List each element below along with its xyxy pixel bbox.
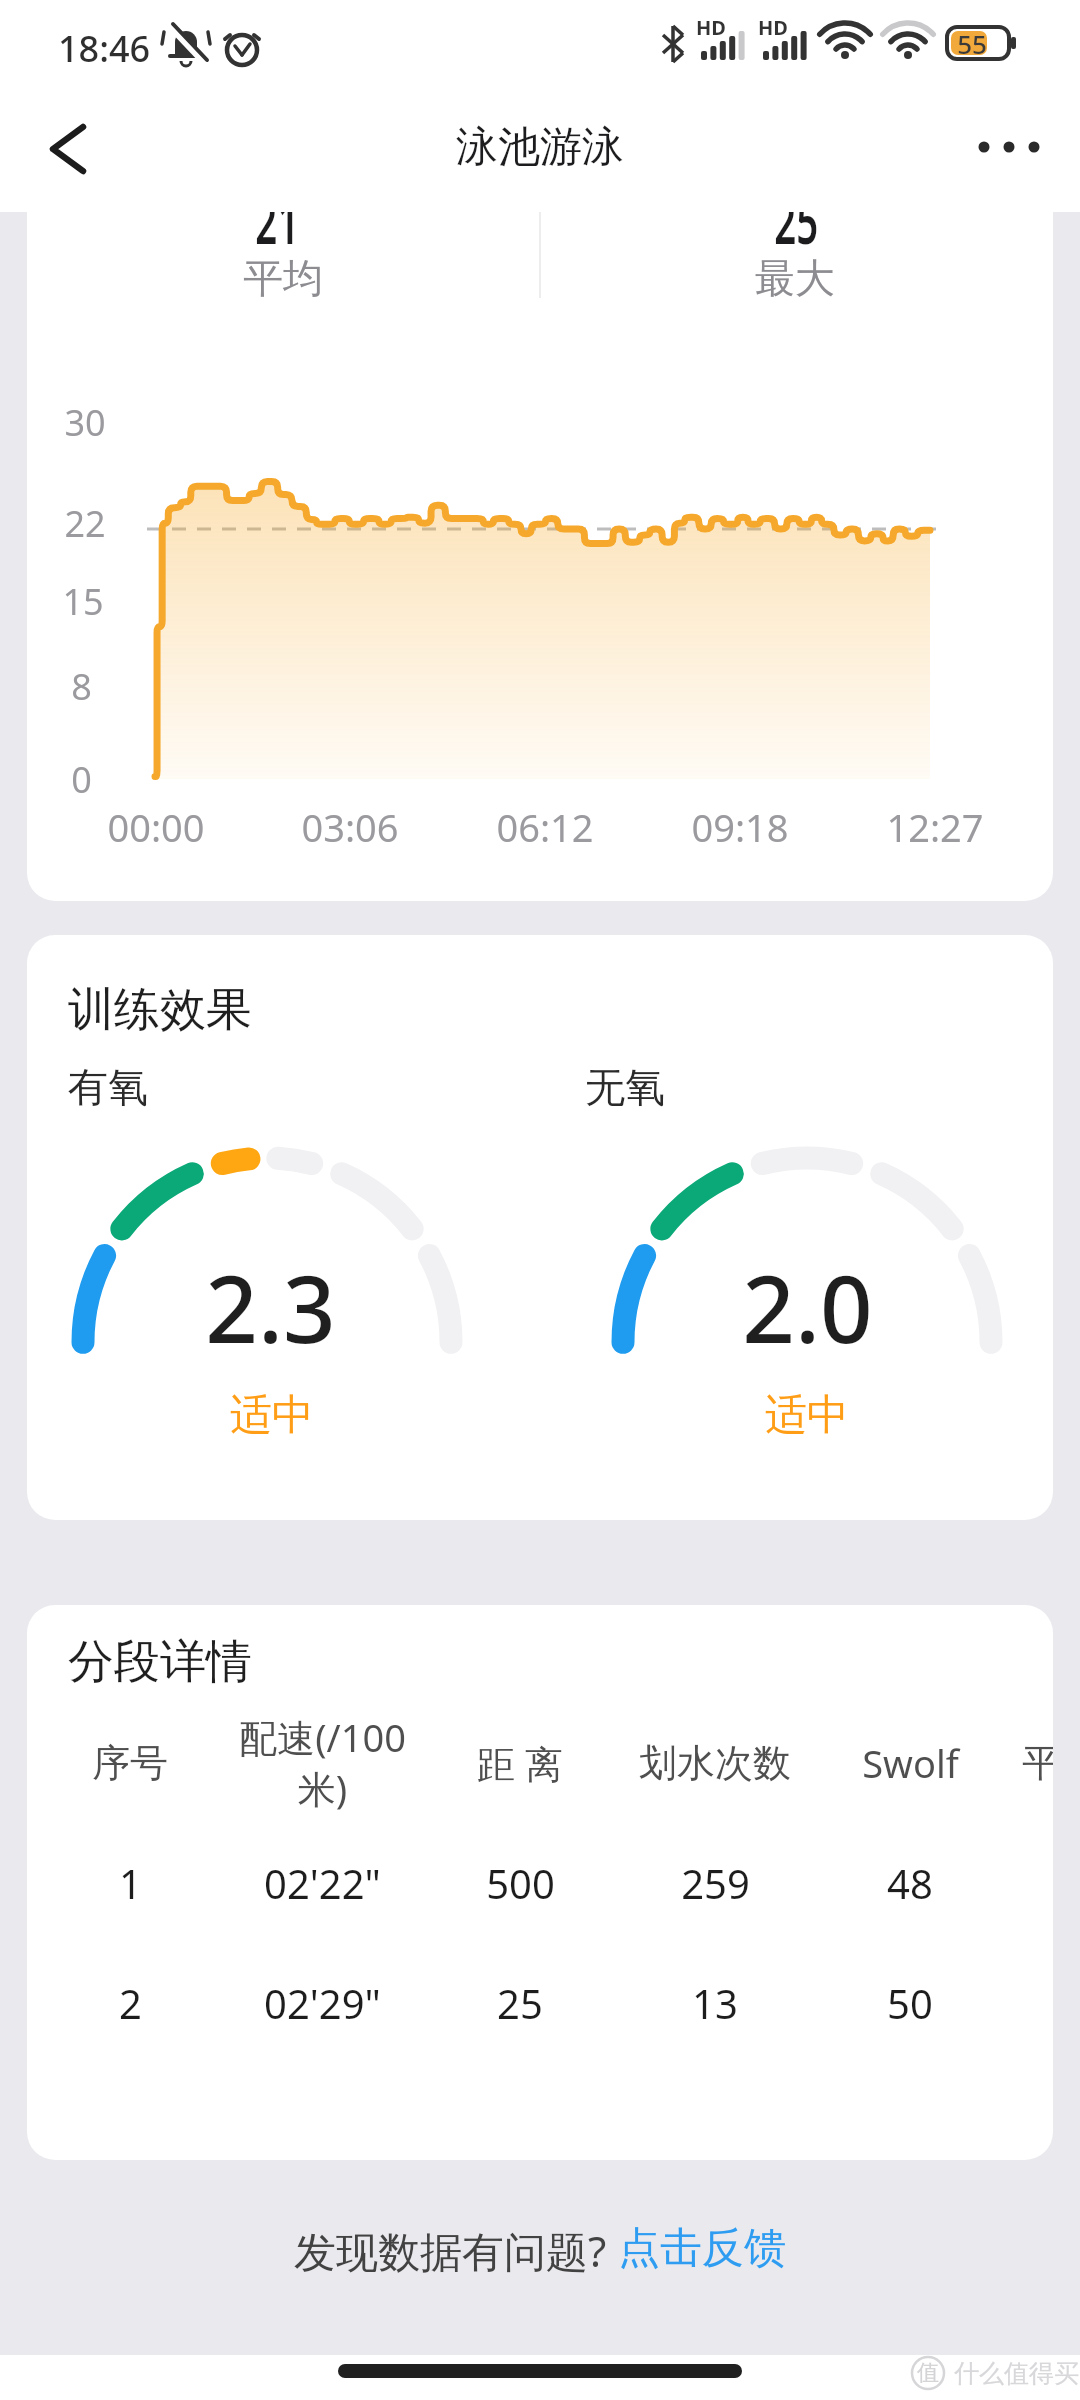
staticText: 序号	[92, 1739, 168, 1787]
staticText: Swolf	[862, 1737, 959, 1789]
staticText: 配速(/100 米)	[239, 1711, 406, 1815]
staticText: 无氧	[585, 1062, 665, 1112]
staticText: 有氧	[68, 1062, 148, 1112]
staticText: 25	[774, 212, 818, 262]
staticText: 平	[1022, 1739, 1053, 1787]
button[interactable]	[25, 113, 115, 183]
staticText: 13	[692, 1976, 738, 2030]
staticText: 15	[62, 577, 104, 626]
staticText: 0	[71, 755, 92, 804]
staticText: 48	[887, 1856, 933, 1910]
staticText: 18:46	[58, 24, 151, 73]
staticText: 03:06	[301, 801, 399, 853]
staticText: 1	[119, 1856, 142, 1910]
staticText: 22	[64, 499, 106, 548]
staticText: 21	[255, 212, 299, 262]
staticText: 训练效果	[68, 981, 252, 1039]
staticText: 适中	[230, 1389, 314, 1442]
staticText: 平均	[243, 253, 323, 303]
staticText: 06:12	[496, 801, 594, 853]
staticText: 2.0	[742, 1245, 873, 1370]
staticText: 12:27	[886, 801, 984, 853]
button[interactable]: 点击反馈	[618, 2222, 786, 2275]
staticText: 距 离	[477, 1737, 563, 1789]
staticText: HD	[758, 14, 788, 41]
staticText: 259	[681, 1856, 750, 1910]
staticText: 2.3	[205, 1245, 336, 1370]
staticText: 09:18	[691, 801, 789, 853]
staticText: 什么值得买	[954, 2358, 1079, 2389]
staticText: 2	[119, 1976, 142, 2030]
staticText: 8	[71, 662, 92, 711]
staticText: HD	[696, 14, 726, 41]
staticText: 00:00	[107, 801, 205, 853]
staticText: 50	[887, 1976, 933, 2030]
staticText: 发现数据有问题?	[294, 2222, 618, 2279]
button[interactable]	[960, 112, 1055, 182]
staticText: 02'29"	[264, 1976, 381, 2030]
staticText: 02'22"	[264, 1856, 381, 1910]
staticText: 适中	[765, 1389, 849, 1442]
staticText: 泳池游泳	[456, 121, 624, 174]
staticText: 最大	[755, 253, 835, 303]
staticText: 30	[64, 398, 106, 447]
staticText: 500	[486, 1856, 555, 1910]
staticText: 划水次数	[639, 1739, 791, 1787]
staticText: 55	[957, 26, 987, 61]
staticText: 25	[497, 1976, 543, 2030]
staticText: 分段详情	[68, 1633, 252, 1691]
staticText: 值	[917, 2359, 939, 2387]
